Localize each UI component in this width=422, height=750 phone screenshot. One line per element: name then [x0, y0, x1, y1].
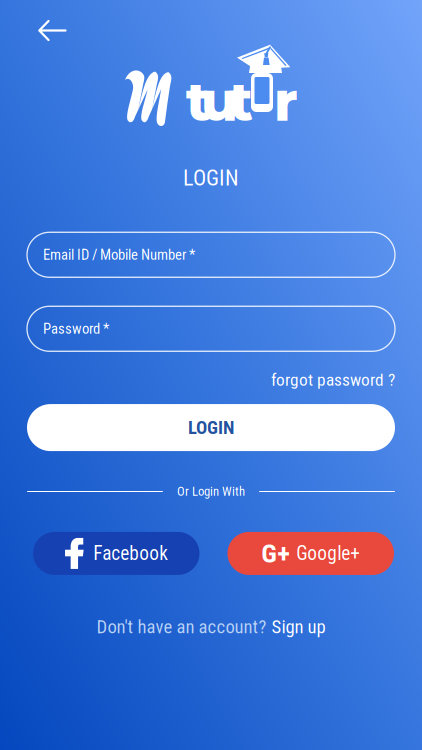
button[interactable]: Facebook — [33, 532, 199, 575]
button[interactable]: G+ — [227, 532, 394, 575]
staticText: LOGIN — [183, 165, 239, 191]
staticText: Email ID / Mobile Number * — [43, 246, 195, 263]
button[interactable]: forgot password ? — [271, 366, 395, 394]
staticText: G+ — [261, 538, 290, 569]
staticText: Or Login With — [177, 484, 245, 499]
staticText: Sign up — [271, 616, 325, 638]
button[interactable]: LOGIN — [27, 404, 395, 451]
staticText: tut — [186, 69, 253, 134]
staticText: r — [274, 69, 298, 134]
staticText: forgot password ? — [271, 370, 395, 390]
button[interactable]: Back — [27, 10, 79, 51]
staticText: LOGIN — [188, 417, 234, 439]
button[interactable]: Don't have an account? — [96, 612, 325, 642]
staticText: Facebook — [93, 542, 168, 565]
staticText: Google+ — [296, 542, 360, 565]
staticText: Don't have an account? — [96, 616, 266, 638]
staticText: Password * — [43, 320, 109, 337]
